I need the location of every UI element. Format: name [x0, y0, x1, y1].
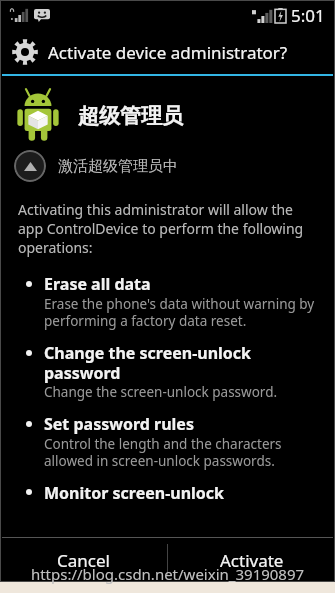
staticText: https://blog.csdn.net/weixin_39190897: [0, 564, 335, 584]
other: Collapse: [14, 150, 46, 182]
staticText: Activate device administrator?: [48, 41, 288, 64]
staticText: 激活超级管理员中: [58, 157, 178, 176]
button[interactable]: Cancel: [0, 538, 167, 582]
staticText: Monitor screen-unlock: [44, 482, 225, 504]
staticText: Erase the phone's data without warning b…: [44, 295, 315, 330]
staticText: Set password rules: [44, 413, 194, 435]
staticText: 5:01: [291, 4, 325, 27]
staticText: Erase all data: [44, 273, 151, 295]
button[interactable]: Collapse: [14, 150, 178, 182]
button[interactable]: Activate: [168, 538, 335, 582]
staticText: Cancel: [57, 549, 110, 572]
staticText: Control the length and the characters al…: [44, 435, 315, 470]
staticText: Change the screen-unlock password: [44, 342, 315, 383]
staticText: Activating this administrator will allow…: [18, 200, 307, 257]
staticText: 超级管理员: [78, 103, 183, 129]
staticText: Change the screen-unlock password.: [44, 383, 278, 401]
staticText: Activate: [220, 549, 284, 572]
